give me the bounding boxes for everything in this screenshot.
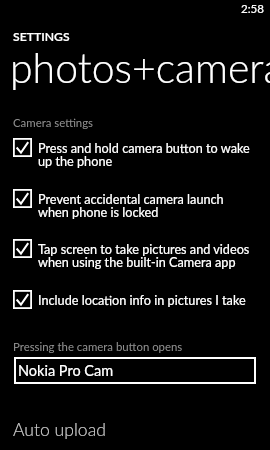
staticText: Prevent accidental camera launch when ph… xyxy=(38,191,224,220)
staticText: 2:58 xyxy=(241,2,265,16)
staticText: Auto upload xyxy=(13,419,106,440)
staticText: Include location info in pictures I take xyxy=(38,292,246,307)
staticText: photos+camera xyxy=(10,43,270,92)
staticText: Press and hold camera button to wake up … xyxy=(38,140,250,169)
button[interactable]: Nokia Pro Cam xyxy=(14,357,256,384)
button[interactable]: Prevent accidental camera launch when ph… xyxy=(0,189,270,225)
staticText: Pressing the camera button opens xyxy=(13,340,183,354)
staticText: Camera settings xyxy=(13,116,94,130)
button[interactable]: Press and hold camera button to wake up … xyxy=(0,138,270,174)
staticText: SETTINGS xyxy=(13,29,70,44)
button[interactable]: Tap screen to take pictures and videos w… xyxy=(0,239,270,275)
staticText: Nokia Pro Cam xyxy=(18,362,114,379)
button[interactable]: Include location info in pictures I take xyxy=(0,290,270,326)
staticText: Tap screen to take pictures and videos w… xyxy=(38,241,250,270)
